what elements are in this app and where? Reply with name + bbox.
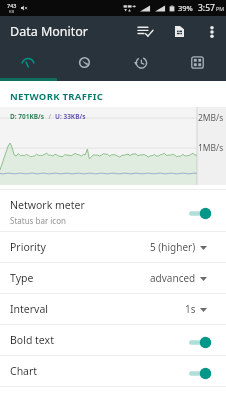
button[interactable]: Toggle — [189, 336, 212, 349]
staticText: KB — [9, 9, 15, 14]
button[interactable]: Interval — [0, 294, 226, 324]
staticText: 2MB/s — [198, 112, 224, 124]
staticText: 1MB/s — [198, 142, 224, 154]
staticText: Network meter — [10, 198, 85, 212]
staticText: 743 — [7, 2, 17, 9]
staticText: Priority — [10, 240, 150, 254]
button[interactable]: Change Type — [196, 267, 210, 289]
staticText: Data Monitor — [10, 23, 89, 40]
button[interactable]: Change Priority — [196, 236, 210, 258]
staticText: 5 (higher) — [150, 240, 196, 254]
staticText: advanced — [150, 271, 196, 285]
button[interactable]: Toggle — [189, 207, 212, 220]
button[interactable]: Change Interval — [196, 298, 210, 320]
staticText: NETWORK TRAFFIC — [10, 90, 104, 103]
staticText: U: 33KB/s — [55, 112, 86, 121]
staticText: D: 701KB/s — [10, 112, 45, 121]
staticText: / — [45, 112, 55, 121]
button[interactable]: Chart — [0, 356, 226, 386]
button[interactable]: Type — [0, 263, 226, 293]
button[interactable]: SIM cards — [161, 16, 198, 47]
button[interactable]: History — [112, 47, 169, 81]
staticText: 39% — [178, 3, 193, 13]
staticText: 3:57 — [198, 2, 215, 14]
button[interactable]: Speed — [0, 47, 56, 81]
staticText: Bold text — [10, 333, 189, 347]
button[interactable]: Apps — [169, 47, 226, 81]
staticText: Type — [10, 271, 150, 285]
button[interactable]: Bold text — [0, 325, 226, 355]
button[interactable]: Toggle — [189, 367, 212, 380]
staticText: Interval — [10, 302, 185, 316]
button[interactable]: More options — [198, 16, 226, 47]
staticText: 1s — [185, 302, 196, 316]
button[interactable]: Usage — [56, 47, 112, 81]
staticText: PM — [216, 5, 225, 12]
button[interactable]: Select apps — [130, 16, 161, 47]
staticText: Chart — [10, 364, 189, 378]
button[interactable]: Network meter — [0, 190, 226, 231]
button[interactable]: Priority — [0, 232, 226, 262]
staticText: Status bar icon — [10, 215, 66, 226]
